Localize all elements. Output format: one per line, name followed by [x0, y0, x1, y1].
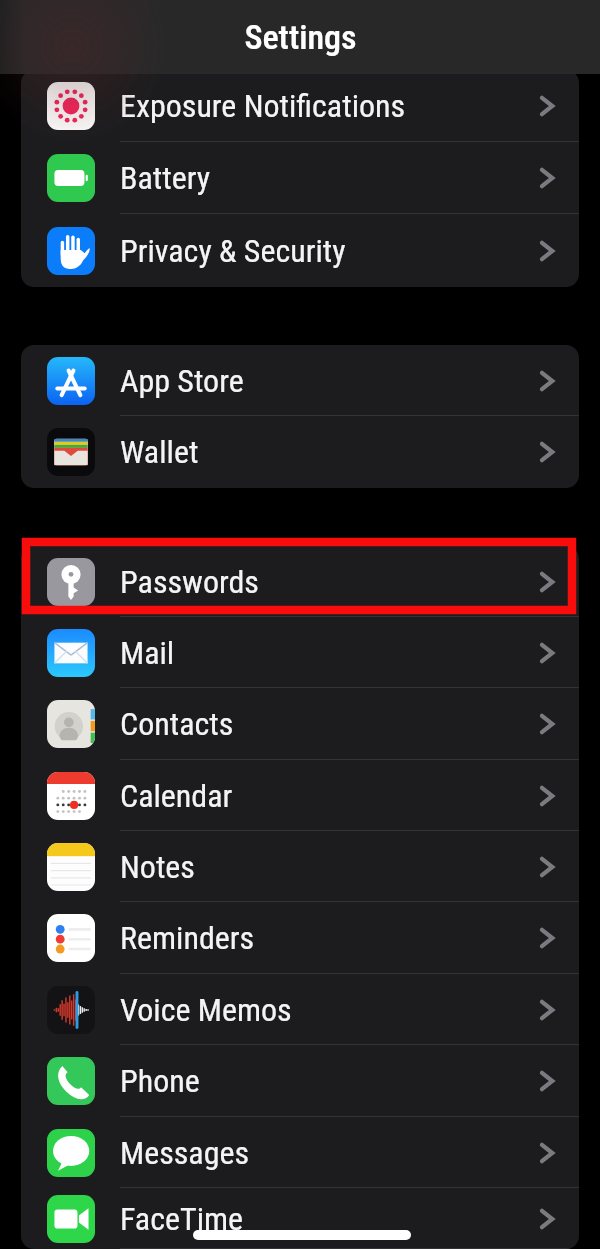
button[interactable]: Passwords — [21, 546, 579, 617]
staticText: Passwords — [120, 563, 259, 601]
button[interactable]: Privacy & Security — [21, 214, 579, 287]
button[interactable]: FaceTime — [21, 1188, 579, 1249]
staticText: FaceTime — [120, 1200, 244, 1238]
staticText: Privacy & Security — [120, 232, 346, 270]
other: Open — [534, 854, 560, 880]
button[interactable]: Battery — [21, 142, 579, 214]
staticText: Voice Memos — [120, 991, 292, 1029]
staticText: Phone — [120, 1062, 200, 1100]
button[interactable]: Mail — [21, 617, 579, 688]
other: Open — [534, 368, 560, 394]
staticText: Messages — [120, 1134, 250, 1172]
button[interactable]: Notes — [21, 831, 579, 902]
staticText: Battery — [120, 159, 211, 197]
other: Open — [534, 238, 560, 264]
staticText: Calendar — [120, 777, 233, 815]
button[interactable]: Exposure Notifications — [21, 70, 579, 142]
staticText: Mail — [120, 634, 175, 672]
button[interactable]: Phone — [21, 1045, 579, 1117]
other: Open — [534, 165, 560, 191]
other: Open — [534, 711, 560, 737]
other: Open — [534, 1206, 560, 1232]
staticText: Exposure Notifications — [120, 87, 406, 125]
button[interactable]: Wallet — [21, 416, 579, 488]
other: Open — [534, 1140, 560, 1166]
button[interactable]: Contacts — [21, 688, 579, 760]
other: Open — [534, 997, 560, 1023]
button[interactable]: App Store — [21, 345, 579, 416]
staticText: Contacts — [120, 705, 234, 743]
button[interactable]: Voice Memos — [21, 974, 579, 1045]
button[interactable]: Messages — [21, 1117, 579, 1188]
staticText: Notes — [120, 848, 195, 886]
other: Open — [534, 783, 560, 809]
staticText: Reminders — [120, 919, 255, 957]
button[interactable]: Calendar — [21, 760, 579, 831]
other: Open — [534, 439, 560, 465]
other: Open — [534, 925, 560, 951]
button[interactable]: Reminders — [21, 902, 579, 974]
other: Open — [534, 640, 560, 666]
staticText: Wallet — [120, 433, 199, 471]
staticText: App Store — [120, 362, 244, 400]
other: Open — [534, 1068, 560, 1094]
other: Open — [534, 93, 560, 119]
staticText: Settings — [244, 17, 357, 57]
other: Open — [534, 569, 560, 595]
